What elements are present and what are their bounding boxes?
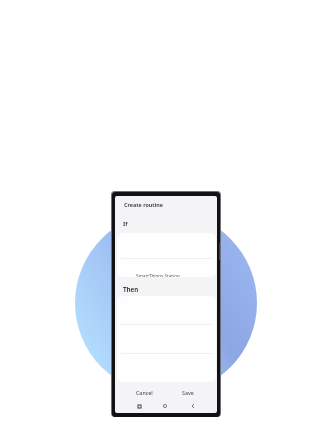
staticText: Save — [182, 389, 194, 396]
staticText: Cancel — [136, 389, 153, 396]
button[interactable]: Save — [169, 387, 206, 397]
staticText: If — [123, 220, 128, 228]
button[interactable]: Home — [160, 401, 170, 411]
button[interactable]: Recents — [134, 401, 144, 411]
button[interactable]: Back — [188, 401, 198, 411]
button[interactable]: Cancel — [126, 387, 163, 397]
button[interactable]: Add condition — [117, 258, 216, 277]
staticText: Then — [123, 285, 139, 293]
staticText: Create routine — [124, 201, 164, 208]
staticText: SmartThings Station — [136, 273, 180, 277]
